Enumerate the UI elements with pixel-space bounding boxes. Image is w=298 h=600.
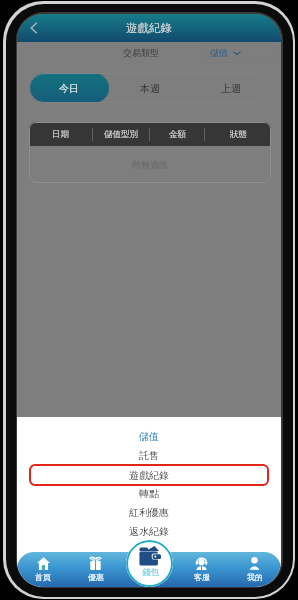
button[interactable]: 儲值 [29,427,269,446]
staticText: 轉點 [139,487,159,500]
staticText: 紅利優惠 [129,506,169,519]
button[interactable]: 客服 [175,552,228,587]
button[interactable]: 上週 [190,73,271,103]
staticText: 尚無資訊 [132,159,168,170]
staticText: 遊戲紀錄 [126,21,172,35]
staticText: 金額 [169,129,186,140]
button[interactable]: 首頁 [17,552,69,587]
button[interactable]: 遊戲紀錄 [29,464,269,486]
button[interactable]: 我的 [228,552,281,587]
staticText: 儲值 [139,430,159,443]
staticText: 託售 [139,449,159,462]
staticText: 優惠 [88,572,104,582]
button[interactable]: 紅利優惠 [29,503,269,522]
button[interactable]: 錢包 [126,540,173,587]
button[interactable]: 優惠 [69,552,122,587]
staticText: 我的 [247,572,263,582]
staticText: 上週 [221,82,241,95]
staticText: 交易類型 [123,47,159,58]
staticText: 今日 [59,82,79,95]
button[interactable]: 轉點 [29,484,269,503]
staticText: 儲值 [210,47,228,58]
button[interactable]: 今日 [29,73,109,103]
staticText: 本週 [140,82,160,95]
staticText: 客服 [194,572,210,582]
button[interactable]: 儲值 [201,42,277,63]
staticText: 狀態 [230,129,247,140]
staticText: 錢包 [142,567,159,578]
staticText: 遊戲紀錄 [129,469,169,482]
button[interactable]: Back [23,17,45,39]
button[interactable]: 託售 [29,446,269,465]
staticText: 返水紀錄 [129,525,169,538]
button[interactable]: 本週 [109,73,190,103]
staticText: 首頁 [35,572,51,582]
staticText: 儲值型別 [104,129,138,140]
staticText: 日期 [52,129,69,140]
button[interactable]: 返水紀錄 [29,522,269,541]
